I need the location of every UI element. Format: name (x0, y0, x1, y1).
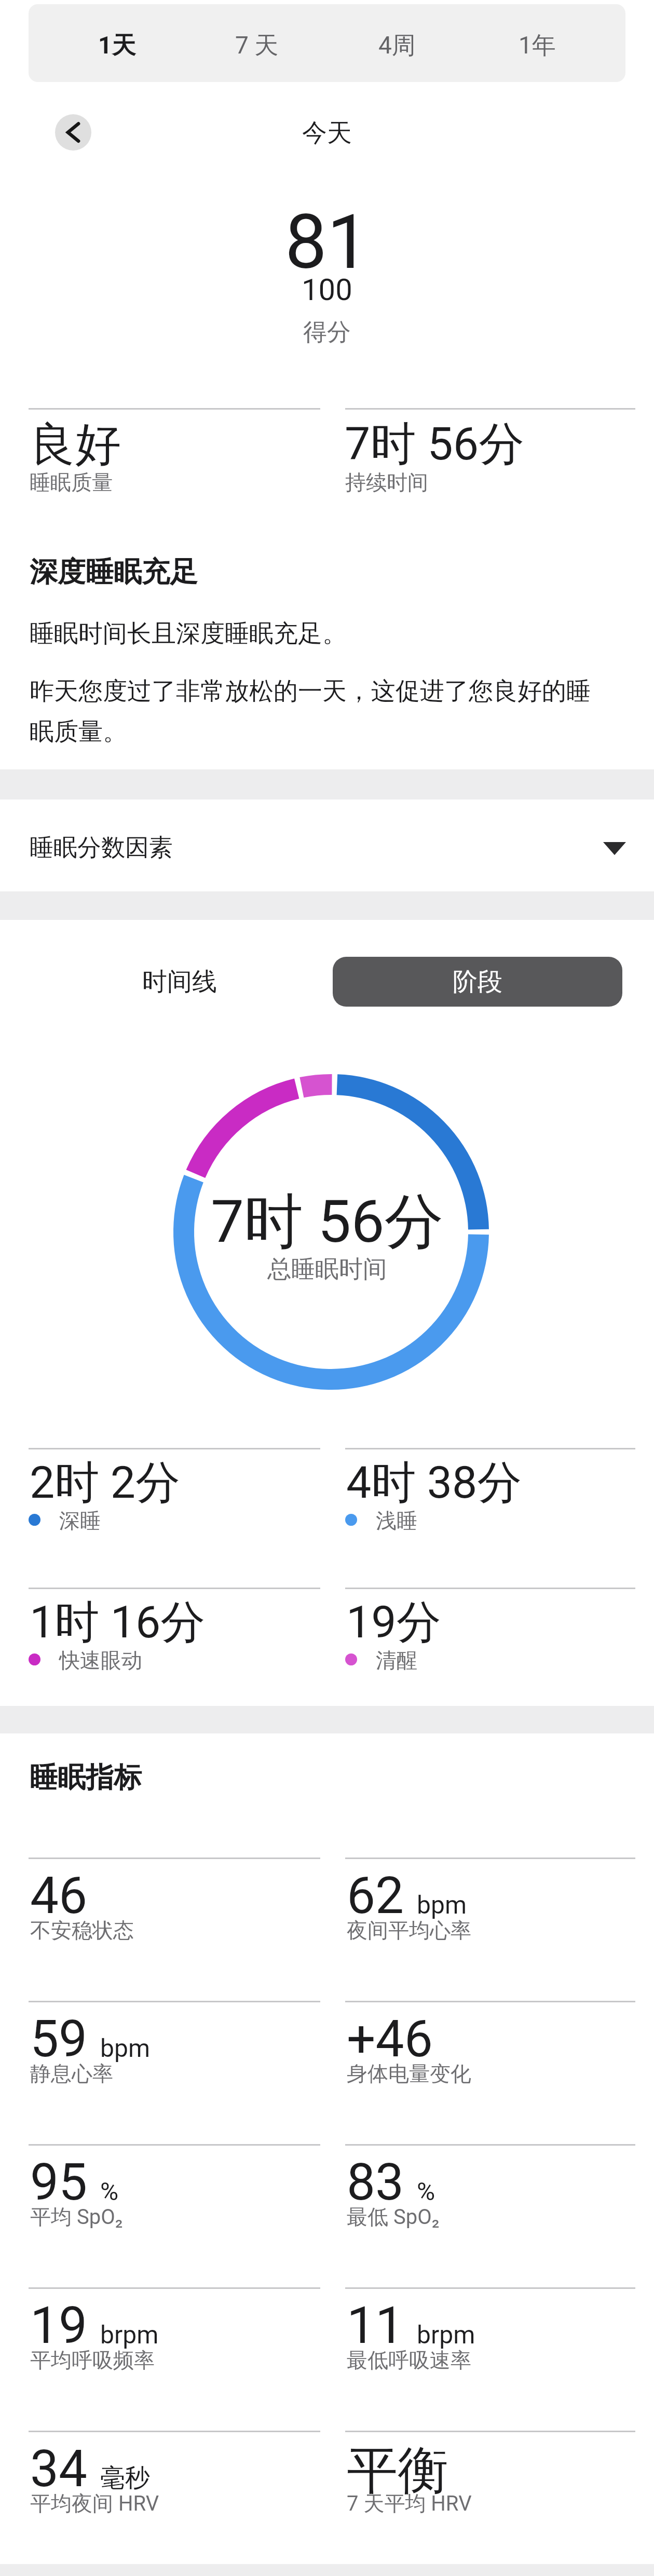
staticText: +46 (347, 2009, 433, 2069)
staticText: 毫秒 (100, 2462, 150, 2493)
button[interactable]: 阶段 (333, 957, 622, 1007)
staticText: 1时 16分 (30, 1594, 206, 1650)
button[interactable]: 7 天 (187, 4, 327, 82)
staticText: 今天 (302, 117, 352, 148)
staticText: 得分 (303, 317, 351, 347)
staticText: 昨天您度过了非常放松的一天，这促进了您良好的睡 (30, 676, 591, 707)
staticText: 持续时间 (345, 469, 428, 495)
staticText: 浅睡 (376, 1508, 417, 1534)
staticText: brpm (417, 2320, 475, 2349)
staticText: 95 (30, 2152, 88, 2212)
staticText: 夜间平均心率 (347, 1917, 471, 1943)
staticText: 最低 SpO₂ (347, 2204, 440, 2230)
staticText: 深度睡眠充足 (30, 554, 198, 590)
staticText: 1天 (98, 31, 136, 61)
staticText: 7 天平均 HRV (347, 2490, 472, 2516)
staticText: % (100, 2177, 119, 2206)
button[interactable]: 1年 (467, 4, 607, 82)
staticText: 平均夜间 HRV (30, 2490, 159, 2516)
staticText: 7时 56分 (211, 1185, 444, 1259)
staticText: bpm (100, 2033, 150, 2063)
button[interactable]: 1天 (47, 4, 187, 82)
staticText: 最低呼吸速率 (347, 2347, 471, 2373)
staticText: 不安稳状态 (30, 1917, 134, 1943)
staticText: 清醒 (376, 1647, 417, 1673)
staticText: 11 (347, 2296, 404, 2355)
staticText: 7 天 (235, 31, 279, 61)
staticText: 时间线 (142, 966, 217, 997)
button[interactable]: 时间线 (32, 957, 321, 1007)
staticText: 平均 SpO₂ (30, 2204, 123, 2230)
staticText: 7时 56分 (345, 415, 525, 473)
button[interactable] (55, 114, 91, 151)
staticText: 睡眠分数因素 (30, 833, 173, 863)
staticText: 59 (30, 2009, 88, 2069)
staticText: 81 (285, 198, 369, 286)
staticText: 总睡眠时间 (267, 1254, 387, 1284)
staticText: 4时 38分 (346, 1455, 522, 1511)
button[interactable]: 睡眠分数因素 (0, 799, 654, 891)
staticText: 深睡 (59, 1508, 101, 1534)
staticText: 睡眠指标 (30, 1760, 142, 1795)
staticText: 静息心率 (30, 2060, 113, 2086)
staticText: 2时 2分 (30, 1455, 180, 1511)
staticText: 平均呼吸频率 (30, 2347, 155, 2373)
staticText: bpm (417, 1890, 467, 1919)
button[interactable]: 4周 (327, 4, 467, 82)
staticText: 4周 (378, 31, 416, 61)
staticText: 睡眠时间长且深度睡眠充足。 (30, 618, 347, 649)
staticText: 34 (30, 2439, 88, 2499)
staticText: 身体电量变化 (347, 2060, 471, 2086)
staticText: brpm (100, 2320, 159, 2349)
staticText: 快速眼动 (59, 1647, 142, 1673)
staticText: % (417, 2177, 435, 2206)
staticText: 19分 (346, 1594, 441, 1650)
staticText: 19 (30, 2296, 88, 2355)
staticText: 睡眠质量 (30, 469, 113, 495)
staticText: 100 (302, 272, 352, 307)
staticText: 良好 (30, 416, 121, 473)
staticText: 46 (30, 1866, 88, 1926)
staticText: 阶段 (453, 966, 502, 997)
staticText: 眠质量。 (30, 716, 127, 747)
staticText: 83 (347, 2152, 404, 2212)
staticText: 1年 (519, 31, 556, 61)
staticText: 平衡 (347, 2439, 448, 2503)
staticText: 62 (347, 1866, 404, 1926)
